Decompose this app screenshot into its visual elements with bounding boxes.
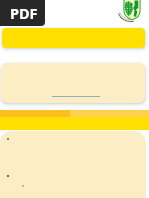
button[interactable]: [1, 63, 145, 103]
staticText: PDF: [10, 3, 38, 23]
button[interactable]: PDF: [0, 0, 45, 26]
button[interactable]: [0, 110, 149, 117]
button[interactable]: [2, 28, 145, 48]
button[interactable]: University emblem: [118, 0, 141, 21]
